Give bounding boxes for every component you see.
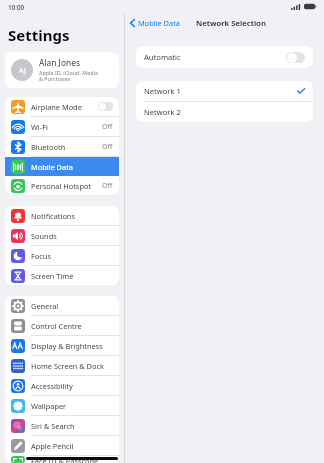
- staticText: Apple Pencil: [31, 441, 74, 451]
- staticText: Siri & Search: [31, 421, 75, 431]
- staticText: Network Selection: [196, 18, 266, 29]
- button[interactable]: Screen Time: [5, 266, 119, 285]
- button[interactable]: AJ: [5, 52, 119, 88]
- staticText: Accessibility: [31, 381, 73, 391]
- button[interactable]: Automatic: [136, 46, 313, 68]
- staticText: General: [31, 301, 59, 311]
- button[interactable]: Home Screen & Dock: [5, 356, 119, 376]
- button[interactable]: Face ID & Passcode: [5, 456, 119, 463]
- button[interactable]: Accessibility: [5, 376, 119, 396]
- staticText: Alan Jones: [39, 57, 80, 68]
- button[interactable]: Automatic network selection toggle: [286, 52, 305, 63]
- staticText: Face ID & Passcode: [31, 456, 99, 463]
- staticText: Personal Hotspot: [31, 181, 92, 191]
- staticText: Wallpaper: [31, 401, 67, 411]
- staticText: Home Screen & Dock: [31, 361, 104, 371]
- staticText: Airplane Mode: [31, 102, 82, 112]
- button[interactable]: General: [5, 296, 119, 316]
- button[interactable]: Display & Brightness: [5, 336, 119, 356]
- button[interactable]: Sounds: [5, 226, 119, 246]
- button[interactable]: Focus: [5, 246, 119, 266]
- staticText: Off: [102, 142, 113, 152]
- staticText: Display & Brightness: [31, 341, 103, 351]
- staticText: Network 1: [144, 86, 181, 96]
- button[interactable]: Wallpaper: [5, 396, 119, 416]
- staticText: Off: [102, 181, 113, 191]
- button[interactable]: Bluetooth: [5, 137, 119, 157]
- staticText: Wi-Fi: [31, 122, 48, 132]
- button[interactable]: Apple Pencil: [5, 436, 119, 456]
- button[interactable]: Notifications: [5, 206, 119, 226]
- button[interactable]: Siri & Search: [5, 416, 119, 436]
- staticText: Sounds: [31, 231, 57, 241]
- staticText: Control Centre: [31, 321, 82, 331]
- staticText: Mobile Data: [31, 162, 73, 172]
- button[interactable]: Personal Hotspot: [5, 176, 119, 195]
- staticText: Apple ID, iCloud, Media & Purchases: [39, 69, 98, 83]
- button[interactable]: Mobile Data: [5, 157, 119, 176]
- staticText: Off: [102, 122, 113, 132]
- button[interactable]: Airplane Mode: [5, 97, 119, 117]
- staticText: AJ: [19, 65, 26, 75]
- staticText: 10:00: [8, 3, 25, 12]
- staticText: Automatic: [144, 52, 181, 62]
- staticText: Bluetooth: [31, 142, 66, 152]
- button[interactable]: Wi-Fi: [5, 117, 119, 137]
- button[interactable]: Airplane Mode toggle: [98, 102, 113, 111]
- staticText: Notifications: [31, 211, 75, 221]
- staticText: Network 2: [144, 107, 181, 117]
- staticText: Focus: [31, 251, 51, 261]
- staticText: Mobile Data: [138, 18, 180, 28]
- button[interactable]: Network 1: [136, 81, 313, 101]
- button[interactable]: Network 2: [136, 102, 313, 122]
- staticText: Screen Time: [31, 271, 74, 281]
- button[interactable]: Control Centre: [5, 316, 119, 336]
- staticText: Settings: [8, 25, 70, 45]
- button[interactable]: Mobile Data: [130, 18, 180, 28]
